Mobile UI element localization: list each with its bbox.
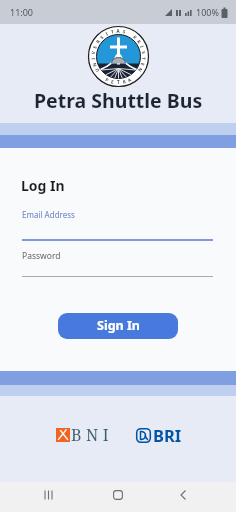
button[interactable] [38, 484, 60, 506]
staticText: BRI [153, 424, 182, 446]
staticText: Email Address [22, 209, 75, 220]
staticText: Password [22, 250, 61, 262]
button[interactable] [107, 484, 129, 506]
button[interactable]: BNI [56, 424, 114, 446]
staticText: 11:00 [10, 6, 34, 18]
button[interactable]: Sign In [58, 313, 178, 339]
staticText: BNI [71, 424, 114, 446]
staticText: 100% [196, 6, 219, 18]
staticText: Petra Shuttle Bus [34, 87, 203, 114]
staticText: Sign In [97, 317, 140, 334]
button[interactable]: BRI [136, 424, 182, 446]
button[interactable] [172, 484, 194, 506]
staticText: Log In [21, 176, 65, 195]
